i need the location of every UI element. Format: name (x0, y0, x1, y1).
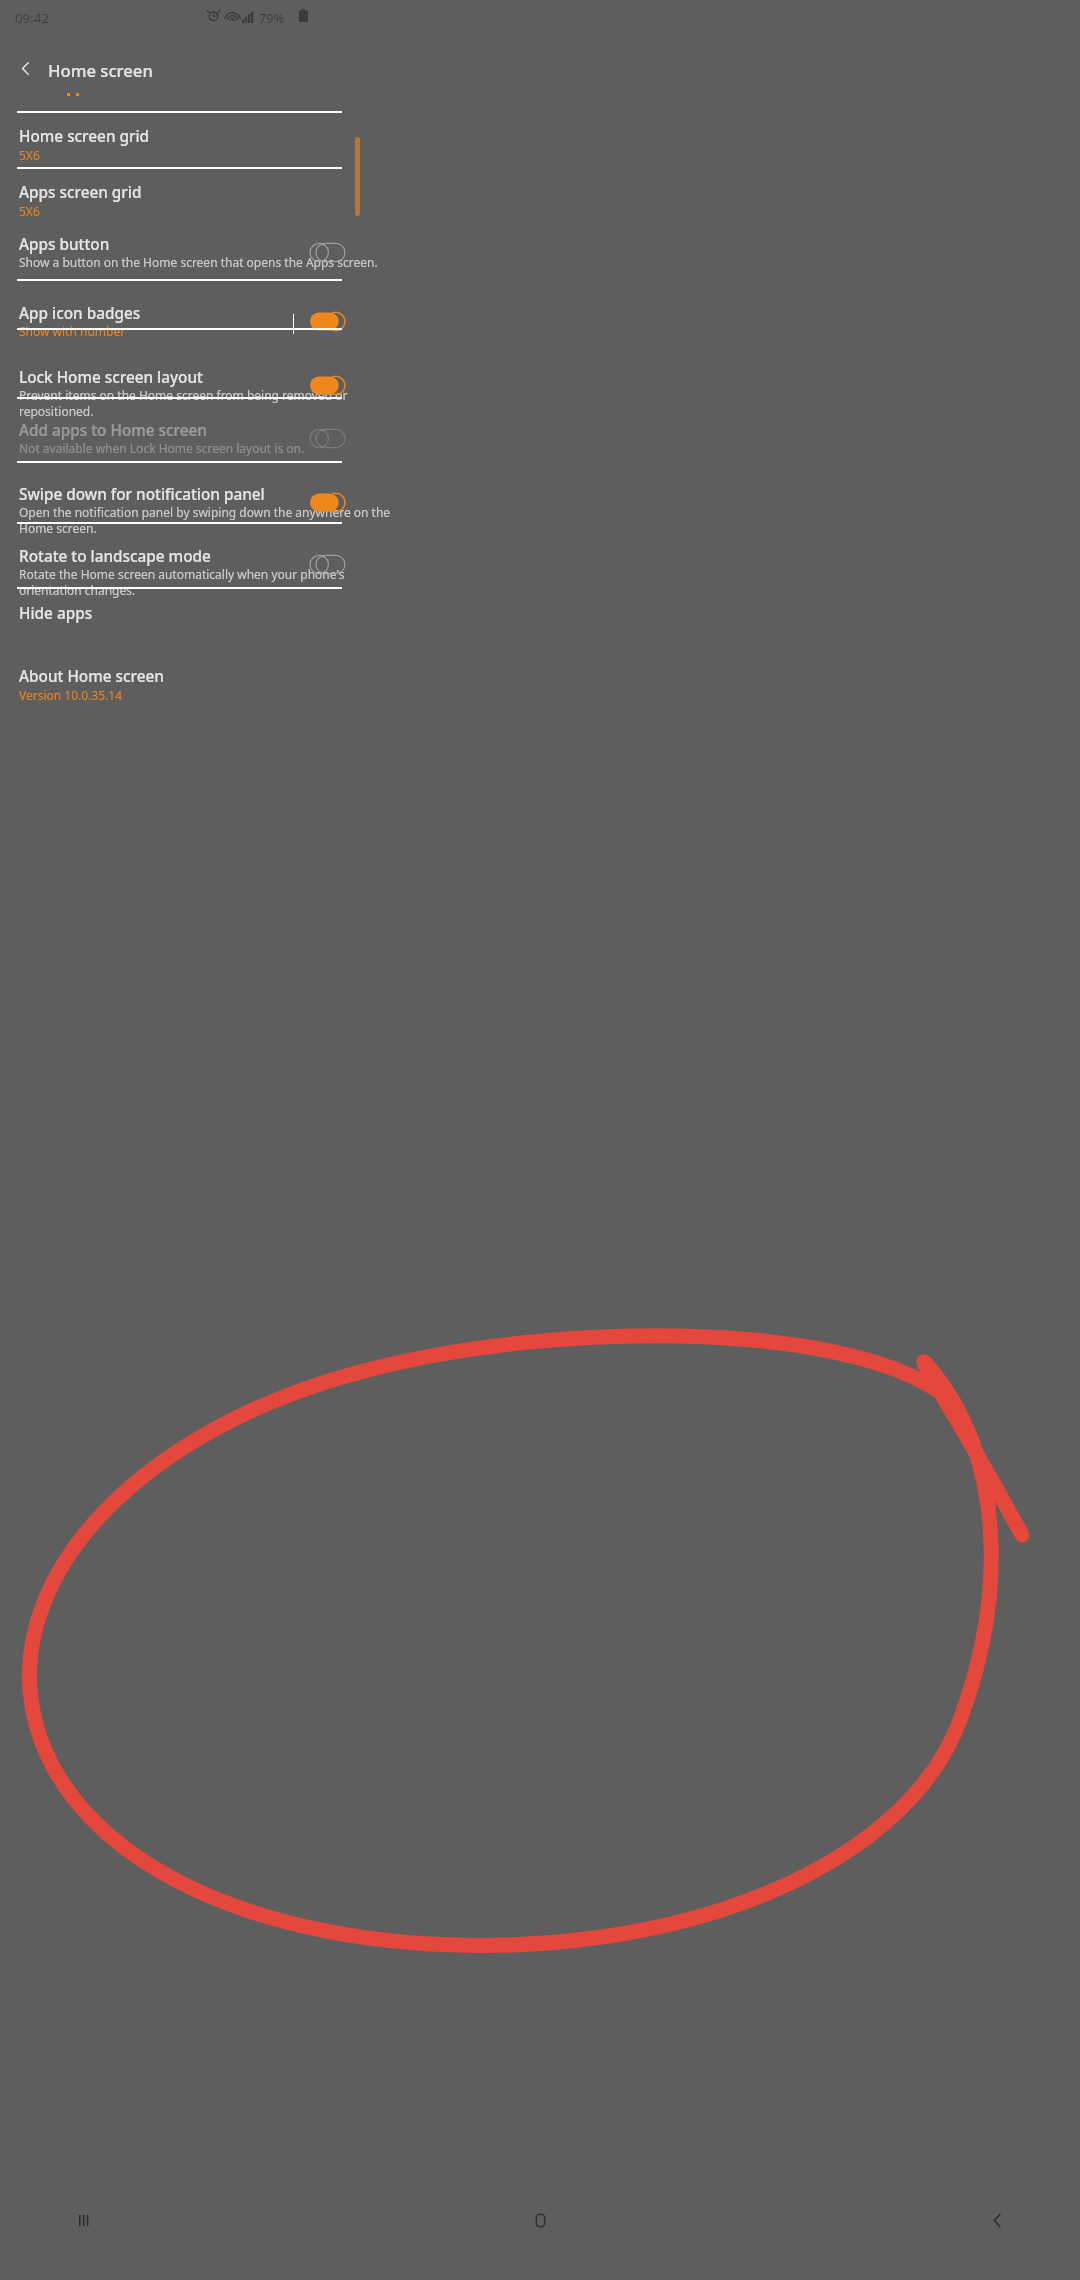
button[interactable]: Rotate to landscape mode off (310, 554, 345, 575)
button[interactable]: Apps button (0, 233, 1080, 280)
staticText: 79% (259, 9, 284, 26)
staticText: Add apps to Home screen (19, 420, 207, 441)
button[interactable]: Back (977, 2204, 1017, 2237)
button[interactable]: About Home screen (0, 662, 1080, 709)
staticText: Swipe down for notification panel (19, 484, 265, 505)
staticText: About Home screen (19, 666, 164, 687)
button[interactable]: Apps screen grid (0, 181, 1080, 221)
staticText: Open the notification panel by swiping d… (19, 504, 391, 536)
staticText: Version 10.0.35.14 (19, 687, 123, 703)
staticText: Home screen (48, 59, 153, 82)
button[interactable]: Home screen grid (0, 125, 1080, 165)
staticText: Lock Home screen layout (19, 367, 203, 388)
staticText: Show with number (19, 323, 126, 339)
button[interactable]: App icon badges (0, 302, 1080, 349)
button[interactable]: Home (520, 2204, 560, 2237)
button[interactable]: Swipe down for notification panel on (310, 492, 345, 513)
button[interactable]: Lock Home screen layout (0, 366, 1080, 413)
staticText: Home screen grid (19, 126, 150, 147)
staticText: Rotate the Home screen automatically whe… (19, 566, 345, 598)
button[interactable]: Rotate to landscape mode (0, 545, 1080, 592)
staticText: Rotate to landscape mode (19, 546, 211, 567)
staticText: Prevent items on the Home screen from be… (19, 387, 348, 419)
button[interactable]: Back (9, 50, 42, 87)
button[interactable]: Apps button off (310, 242, 345, 263)
button[interactable]: Lock Home screen layout on (310, 375, 345, 396)
button[interactable]: Swipe down for notification panel (0, 483, 1080, 530)
staticText: Not available when Lock Home screen layo… (19, 440, 305, 456)
button[interactable]: App icon badges on (310, 311, 345, 332)
button[interactable]: Recents (63, 2204, 103, 2237)
staticText: Apps screen grid (19, 182, 142, 203)
staticText: 5X6 (19, 147, 40, 163)
staticText: 5X6 (19, 203, 40, 219)
staticText: App icon badges (19, 303, 141, 324)
button[interactable]: Add apps to Home screen (0, 419, 1080, 466)
staticText: Hide apps (19, 603, 93, 624)
staticText: Apps button (19, 234, 110, 255)
button[interactable]: Add apps to Home screen off (310, 428, 345, 449)
staticText: 09:42 (15, 9, 50, 27)
button[interactable]: Hide apps (0, 597, 1080, 634)
staticText: Show a button on the Home screen that op… (19, 254, 378, 270)
